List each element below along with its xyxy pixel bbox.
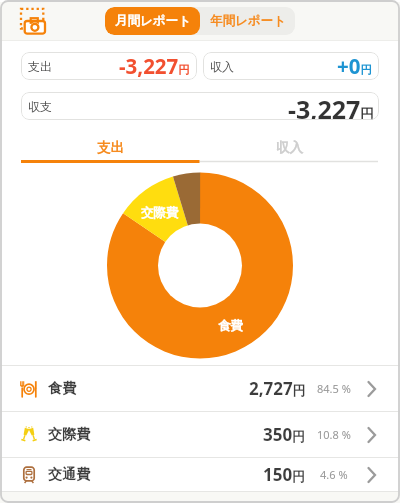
staticText: +0円 <box>337 52 372 80</box>
button[interactable]: 支出 <box>21 134 200 160</box>
button[interactable]: 交通費 <box>0 458 400 491</box>
button[interactable]: 月間レポート <box>105 7 200 35</box>
staticText: -3,227円 <box>288 92 374 120</box>
staticText: 収入 <box>276 139 303 156</box>
staticText: 150円 <box>263 463 306 486</box>
staticText: 4.6 % <box>320 467 348 482</box>
staticText: 収入 <box>210 59 234 74</box>
button[interactable]: 収支 <box>21 92 379 120</box>
staticText: 2,727円 <box>249 377 306 400</box>
button[interactable]: 年間レポート <box>200 7 295 35</box>
button[interactable] <box>19 7 47 35</box>
staticText: 収支 <box>28 99 52 114</box>
staticText: 支出 <box>28 59 52 74</box>
staticText: 交際費 <box>48 426 90 444</box>
staticText: 交通費 <box>48 466 90 484</box>
staticText: 支出 <box>97 139 124 156</box>
staticText: -3,227円 <box>119 52 190 80</box>
button[interactable]: 食費 <box>0 366 400 411</box>
staticText: 交際費 <box>141 205 179 221</box>
staticText: 食費 <box>218 318 243 334</box>
staticText: 84.5 % <box>317 381 351 396</box>
staticText: 350円 <box>263 423 306 446</box>
staticText: 食費 <box>48 380 76 398</box>
button[interactable]: 交際費 <box>0 412 400 457</box>
button[interactable]: 収入 <box>203 52 379 80</box>
button[interactable]: 支出 <box>21 52 197 80</box>
button[interactable]: 収入 <box>200 134 379 160</box>
staticText: 10.8 % <box>317 427 351 442</box>
staticText: 年間レポート <box>210 13 286 29</box>
staticText: 月間レポート <box>115 13 191 29</box>
